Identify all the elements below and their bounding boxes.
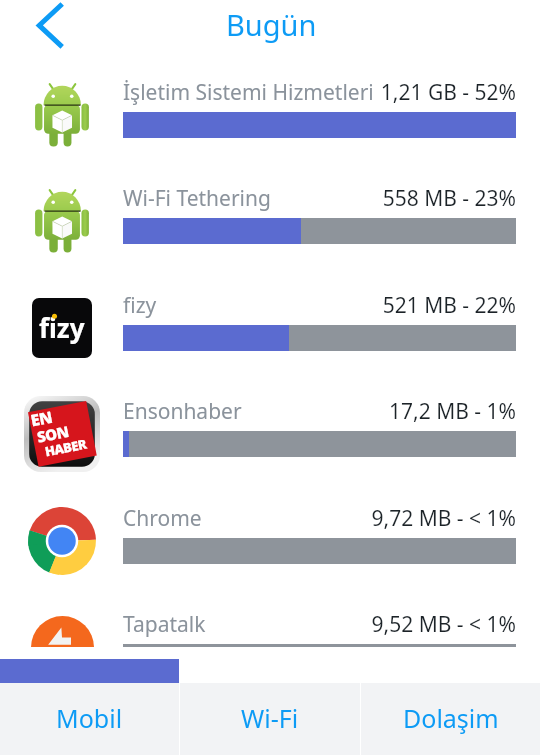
button[interactable]: EN bbox=[0, 381, 540, 487]
staticText: Tapatalk bbox=[123, 610, 206, 639]
staticText: 17,2 MB - 1% bbox=[340, 397, 516, 426]
staticText: Chrome bbox=[123, 504, 202, 533]
button[interactable]: Wi-Fi Tethering bbox=[0, 168, 540, 274]
staticText: fizy bbox=[123, 291, 157, 320]
button[interactable]: Tapatalk bbox=[0, 594, 540, 647]
button[interactable]: Dolaşim bbox=[361, 683, 540, 755]
staticText: Mobil bbox=[56, 701, 123, 735]
button[interactable]: Mobil bbox=[0, 683, 179, 755]
staticText: İşletim Sistemi Hizmetleri bbox=[123, 78, 374, 107]
staticText: 9,52 MB - < 1% bbox=[340, 610, 516, 639]
staticText: 558 MB - 23% bbox=[340, 184, 516, 213]
button[interactable]: Wi-Fi bbox=[180, 683, 360, 755]
staticText: SON bbox=[35, 421, 70, 447]
staticText: Dolaşim bbox=[403, 701, 499, 735]
staticText: fizy bbox=[39, 310, 85, 345]
staticText: HABER bbox=[43, 435, 88, 460]
staticText: Wi-Fi Tethering bbox=[123, 184, 271, 213]
staticText: Wi-Fi bbox=[241, 701, 299, 735]
staticText: Ensonhaber bbox=[123, 397, 242, 426]
button[interactable]: fizy bbox=[0, 275, 540, 381]
button[interactable]: Back bbox=[22, 0, 78, 56]
button[interactable]: Chrome bbox=[0, 488, 540, 594]
button[interactable]: İşletim Sistemi Hizmetleri bbox=[0, 62, 540, 168]
staticText: 1,21 GB - 52% bbox=[340, 78, 516, 107]
staticText: Bugün bbox=[226, 5, 317, 44]
staticText: 9,72 MB - < 1% bbox=[340, 504, 516, 533]
staticText: 521 MB - 22% bbox=[340, 291, 516, 320]
staticText: EN bbox=[29, 406, 55, 431]
